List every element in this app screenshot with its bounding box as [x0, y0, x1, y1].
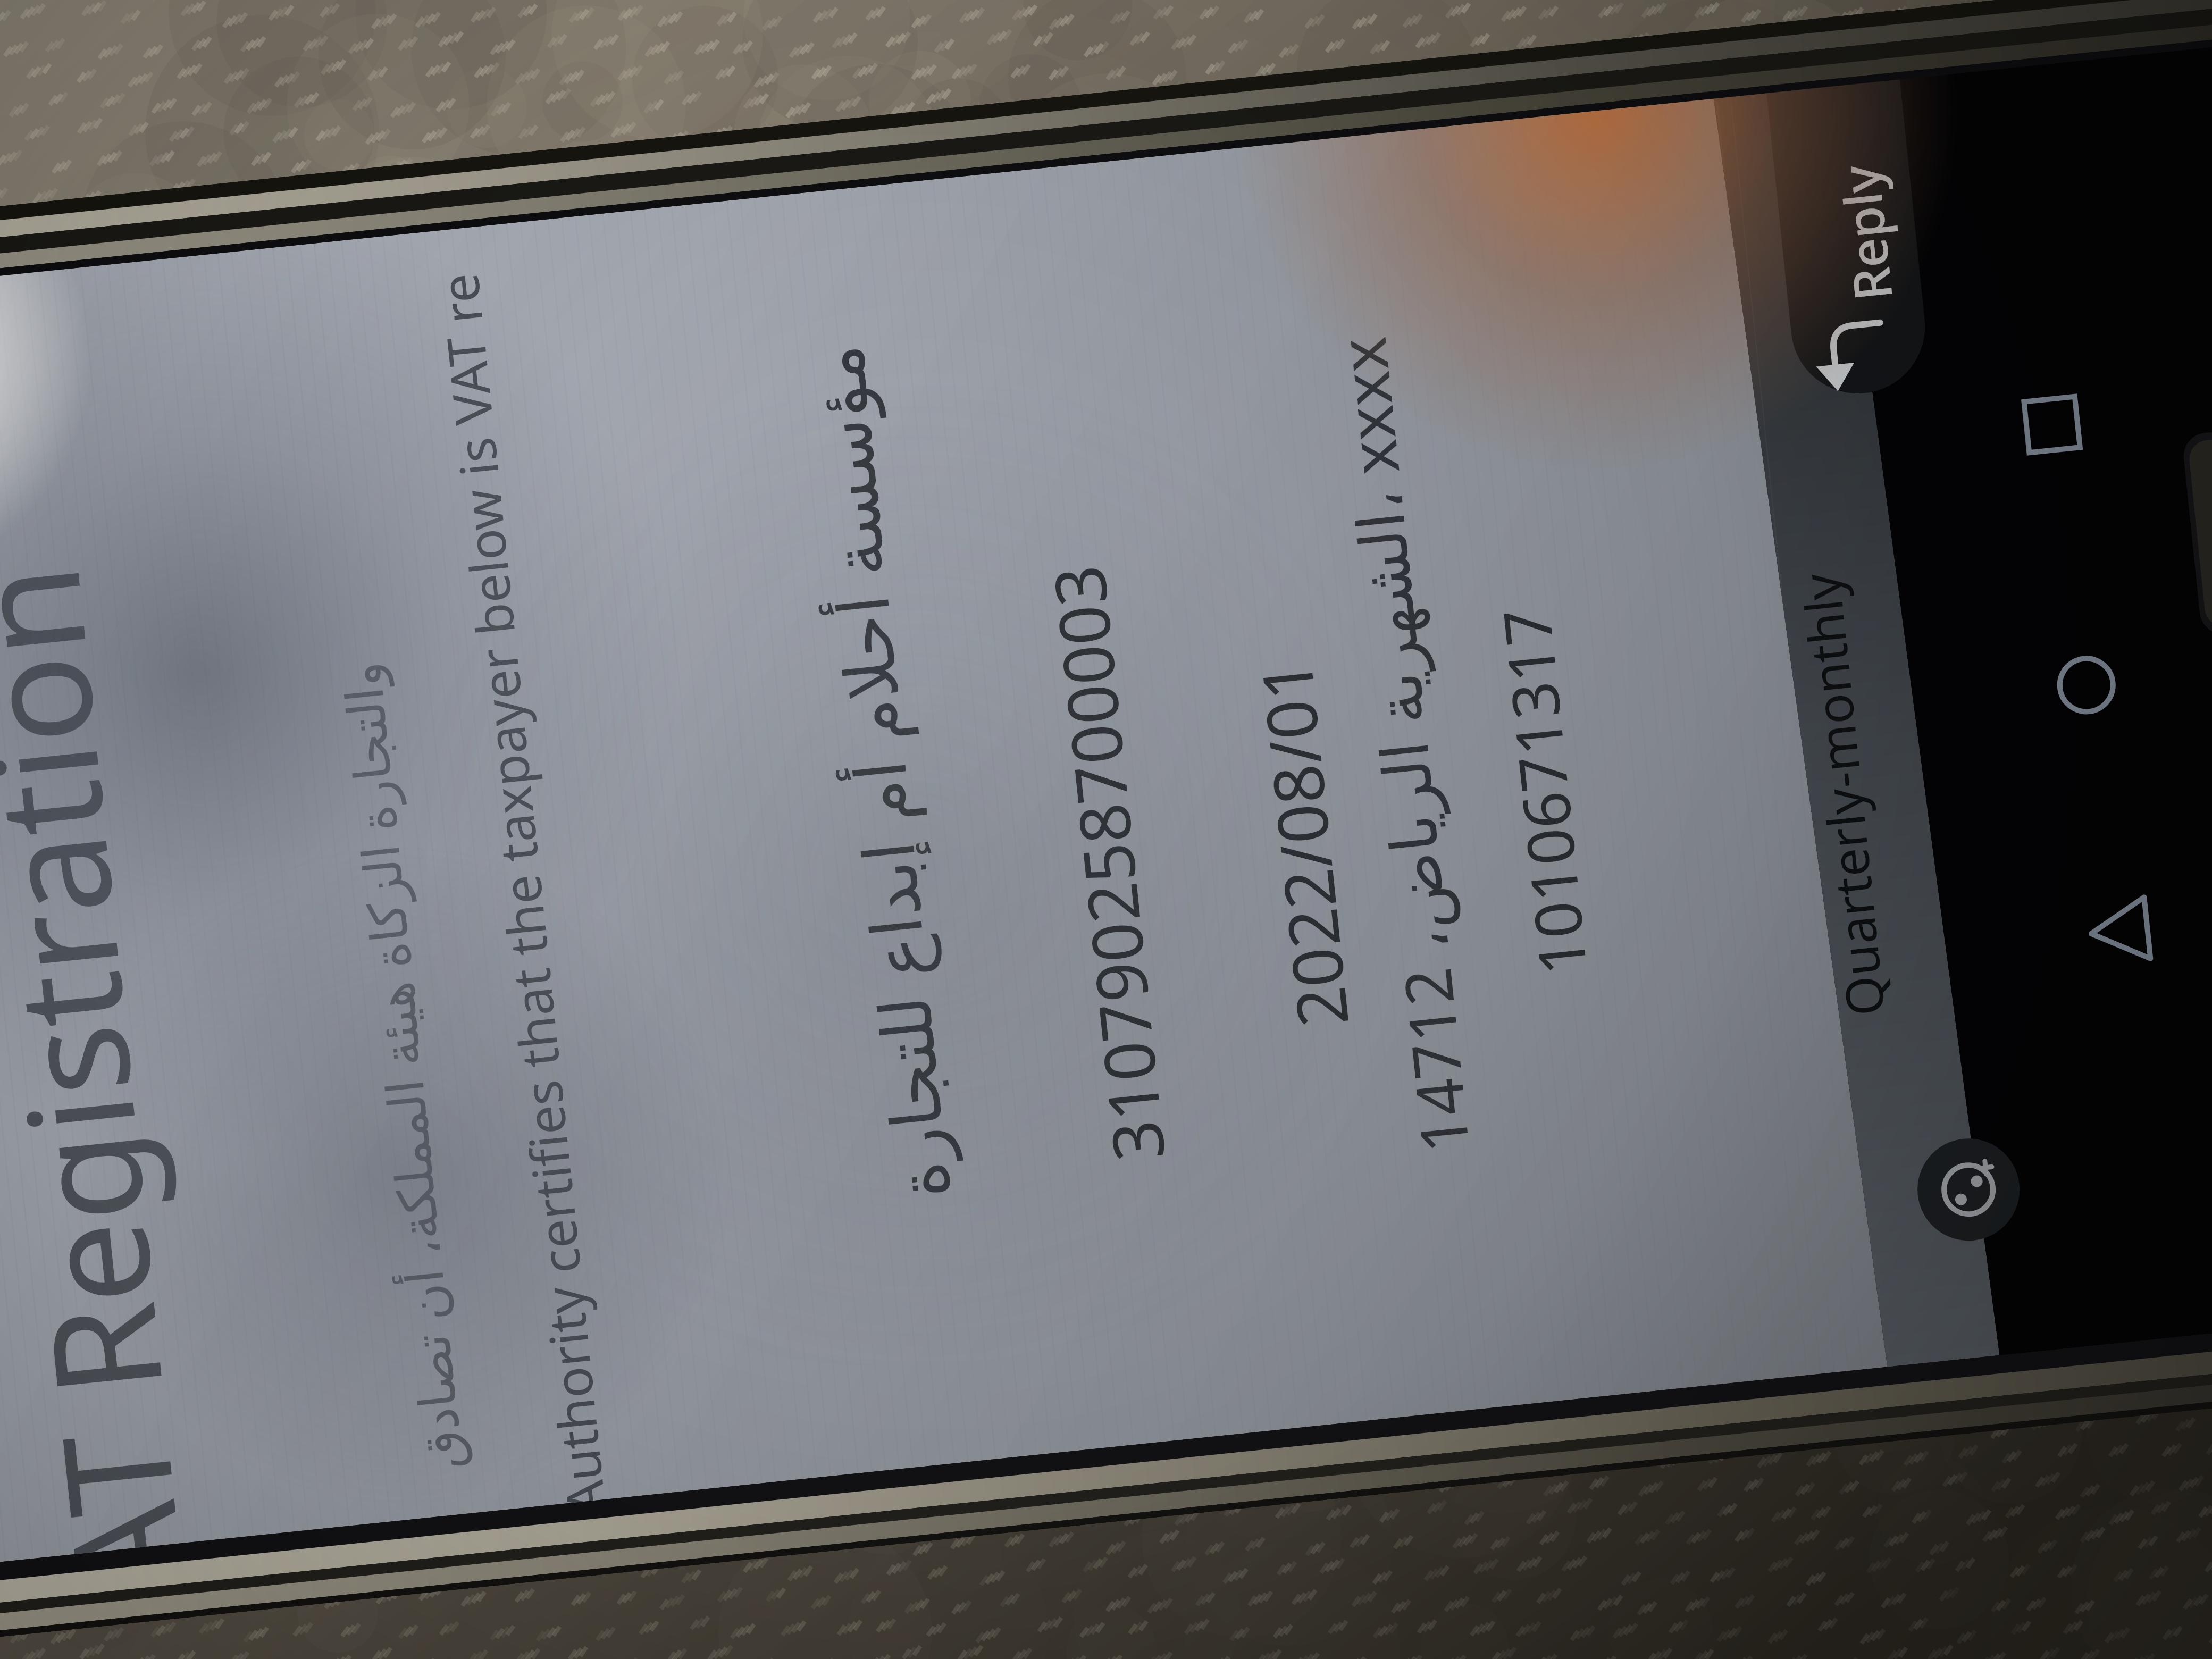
button[interactable]: Reply — [1747, 0, 1959, 456]
button[interactable]: Recent apps — [2015, 388, 2090, 463]
button[interactable]: Home — [2050, 649, 2124, 723]
button[interactable]: Back — [2081, 895, 2156, 969]
button[interactable]: Google Lens — [1915, 1136, 2022, 1243]
